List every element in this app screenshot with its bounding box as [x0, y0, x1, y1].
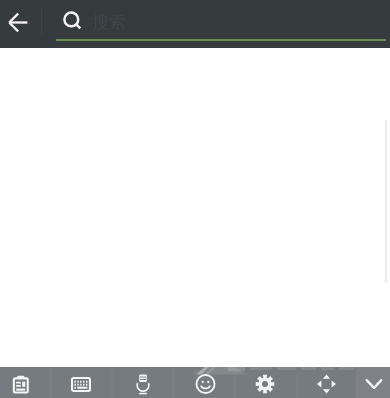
- staticText: 搜索: [92, 12, 126, 33]
- button[interactable]: Hide keyboard: [356, 367, 390, 398]
- button[interactable]: Voice input: [112, 367, 173, 398]
- button[interactable]: Back: [0, 0, 41, 48]
- button[interactable]: Settings: [235, 367, 297, 398]
- button[interactable]: Keyboard: [51, 367, 112, 398]
- button[interactable]: Move cursor: [297, 367, 356, 398]
- button[interactable]: Clipboard: [0, 367, 51, 398]
- button[interactable]: 搜索: [56, 0, 386, 48]
- button[interactable]: Emoji: [173, 367, 235, 398]
